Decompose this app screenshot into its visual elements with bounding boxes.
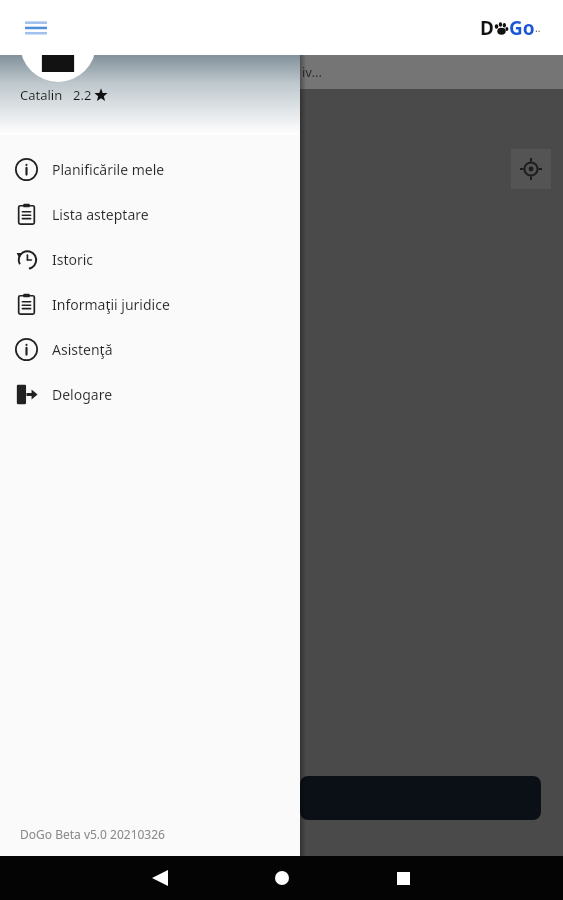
staticText: Delogare (52, 385, 113, 404)
staticText: Informaţii juridice (52, 295, 170, 314)
staticText: D (480, 15, 494, 41)
button[interactable]: Istoric (0, 237, 300, 282)
staticText: Istoric (52, 250, 94, 269)
staticText: Planificările mele (52, 160, 165, 179)
button[interactable]: Lista asteptare (0, 192, 300, 237)
staticText: Catalin (20, 86, 63, 104)
staticText: iv... (302, 63, 322, 81)
button[interactable]: My location (511, 149, 551, 189)
staticText: DoGo Beta v5.0 20210326 (20, 826, 165, 842)
button[interactable]: Open navigation menu (18, 10, 54, 46)
button[interactable]: Planificările mele (0, 147, 300, 192)
staticText: .. (535, 21, 541, 35)
button[interactable]: Home (262, 858, 302, 898)
button[interactable]: Asistenţă (0, 327, 300, 372)
button[interactable]: Informaţii juridice (0, 282, 300, 327)
staticText: Go (509, 15, 535, 41)
staticText: 2.2 (73, 86, 92, 104)
staticText: Asistenţă (52, 340, 113, 359)
button[interactable]: Back (140, 858, 180, 898)
staticText: Lista asteptare (52, 205, 149, 224)
button[interactable] (300, 776, 541, 820)
button[interactable]: Delogare (0, 372, 300, 417)
button[interactable]: Recent apps (383, 858, 423, 898)
